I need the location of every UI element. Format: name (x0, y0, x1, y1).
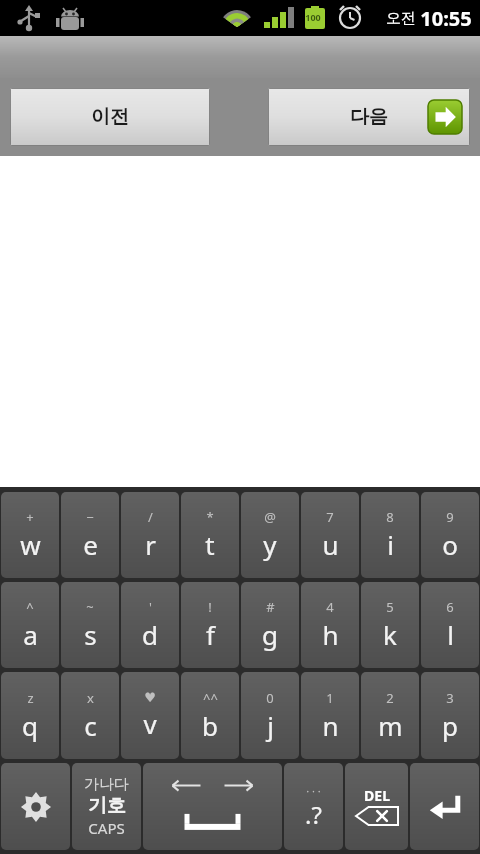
staticText: 7 (326, 508, 334, 526)
staticText: 0 (266, 689, 274, 707)
staticText: e (83, 527, 98, 562)
staticText: i (387, 527, 394, 562)
button[interactable]: 2 (361, 672, 419, 759)
button[interactable]: 0 (241, 672, 299, 759)
staticText: ! (208, 598, 212, 616)
button[interactable]: 3 (421, 672, 479, 759)
staticText: 오전 (386, 9, 416, 28)
staticText: 5 (386, 598, 394, 616)
button[interactable]: 6 (421, 582, 479, 668)
button[interactable]: / (121, 492, 179, 578)
staticText: ^^ (203, 689, 218, 707)
staticText: 다음 (350, 105, 388, 129)
button[interactable]: 9 (421, 492, 479, 578)
staticText: 기호 (88, 794, 126, 818)
staticText: ' (149, 598, 152, 616)
staticText: @ (264, 508, 276, 526)
staticText: h (322, 617, 339, 652)
button[interactable]: Settings (1, 763, 70, 850)
button[interactable]: Space (143, 763, 282, 850)
staticText: y (263, 527, 277, 562)
staticText: + (26, 508, 34, 526)
button[interactable]: 1 (301, 672, 359, 759)
staticText: s (84, 617, 97, 652)
staticText: z (27, 689, 34, 707)
staticText: 6 (446, 598, 454, 616)
staticText: m (378, 708, 403, 743)
button[interactable]: · · · (284, 763, 343, 850)
staticText: o (442, 527, 458, 562)
staticText: 10:55 (420, 5, 472, 32)
staticText: j (267, 708, 274, 743)
staticText: r (145, 527, 156, 562)
staticText: f (206, 617, 215, 652)
staticText: − (86, 508, 94, 526)
button[interactable]: ~ (61, 582, 119, 668)
staticText: x (87, 689, 94, 707)
staticText: 100 (305, 11, 321, 23)
staticText: b (202, 708, 218, 743)
button[interactable]: 4 (301, 582, 359, 668)
button[interactable]: x (61, 672, 119, 759)
staticText: 1 (326, 689, 334, 707)
button[interactable]: − (61, 492, 119, 578)
staticText: * (206, 508, 214, 526)
staticText: · · · (306, 783, 321, 798)
staticText: c (84, 708, 97, 743)
staticText: v (143, 706, 157, 741)
staticText: 가나다 (84, 775, 129, 794)
staticText: ~ (86, 598, 94, 616)
button[interactable]: 가나다 (72, 763, 141, 850)
staticText: .? (305, 798, 322, 831)
button[interactable]: 다음 (268, 88, 470, 146)
button[interactable]: Enter (410, 763, 479, 850)
button[interactable]: ^ (1, 582, 59, 668)
staticText: 9 (446, 508, 454, 526)
staticText: ♥ (144, 690, 156, 705)
staticText: l (447, 617, 454, 652)
button[interactable]: 5 (361, 582, 419, 668)
staticText: 이전 (91, 105, 129, 129)
button[interactable]: Delete (345, 763, 408, 850)
staticText: g (262, 617, 278, 652)
staticText: 3 (446, 689, 454, 707)
staticText: k (383, 617, 397, 652)
staticText: a (23, 617, 38, 652)
button[interactable]: + (1, 492, 59, 578)
button[interactable]: ♥ (121, 672, 179, 759)
button[interactable]: 7 (301, 492, 359, 578)
staticText: CAPS (88, 818, 125, 838)
button[interactable]: * (181, 492, 239, 578)
button[interactable]: ! (181, 582, 239, 668)
staticText: / (148, 508, 153, 526)
staticText: t (205, 527, 215, 562)
staticText: w (20, 527, 41, 562)
staticText: n (322, 708, 339, 743)
button[interactable]: ^^ (181, 672, 239, 759)
staticText: q (22, 708, 38, 743)
button[interactable]: ' (121, 582, 179, 668)
staticText: p (442, 708, 458, 743)
staticText: DEL (364, 786, 390, 805)
button[interactable]: # (241, 582, 299, 668)
staticText: 8 (386, 508, 394, 526)
staticText: 4 (326, 598, 334, 616)
staticText: d (142, 617, 158, 652)
button[interactable]: @ (241, 492, 299, 578)
button[interactable]: 8 (361, 492, 419, 578)
staticText: 2 (386, 689, 394, 707)
staticText: ^ (26, 598, 34, 616)
staticText: # (266, 598, 275, 616)
button[interactable]: 이전 (10, 88, 210, 146)
staticText: u (322, 527, 339, 562)
button[interactable]: z (1, 672, 59, 759)
